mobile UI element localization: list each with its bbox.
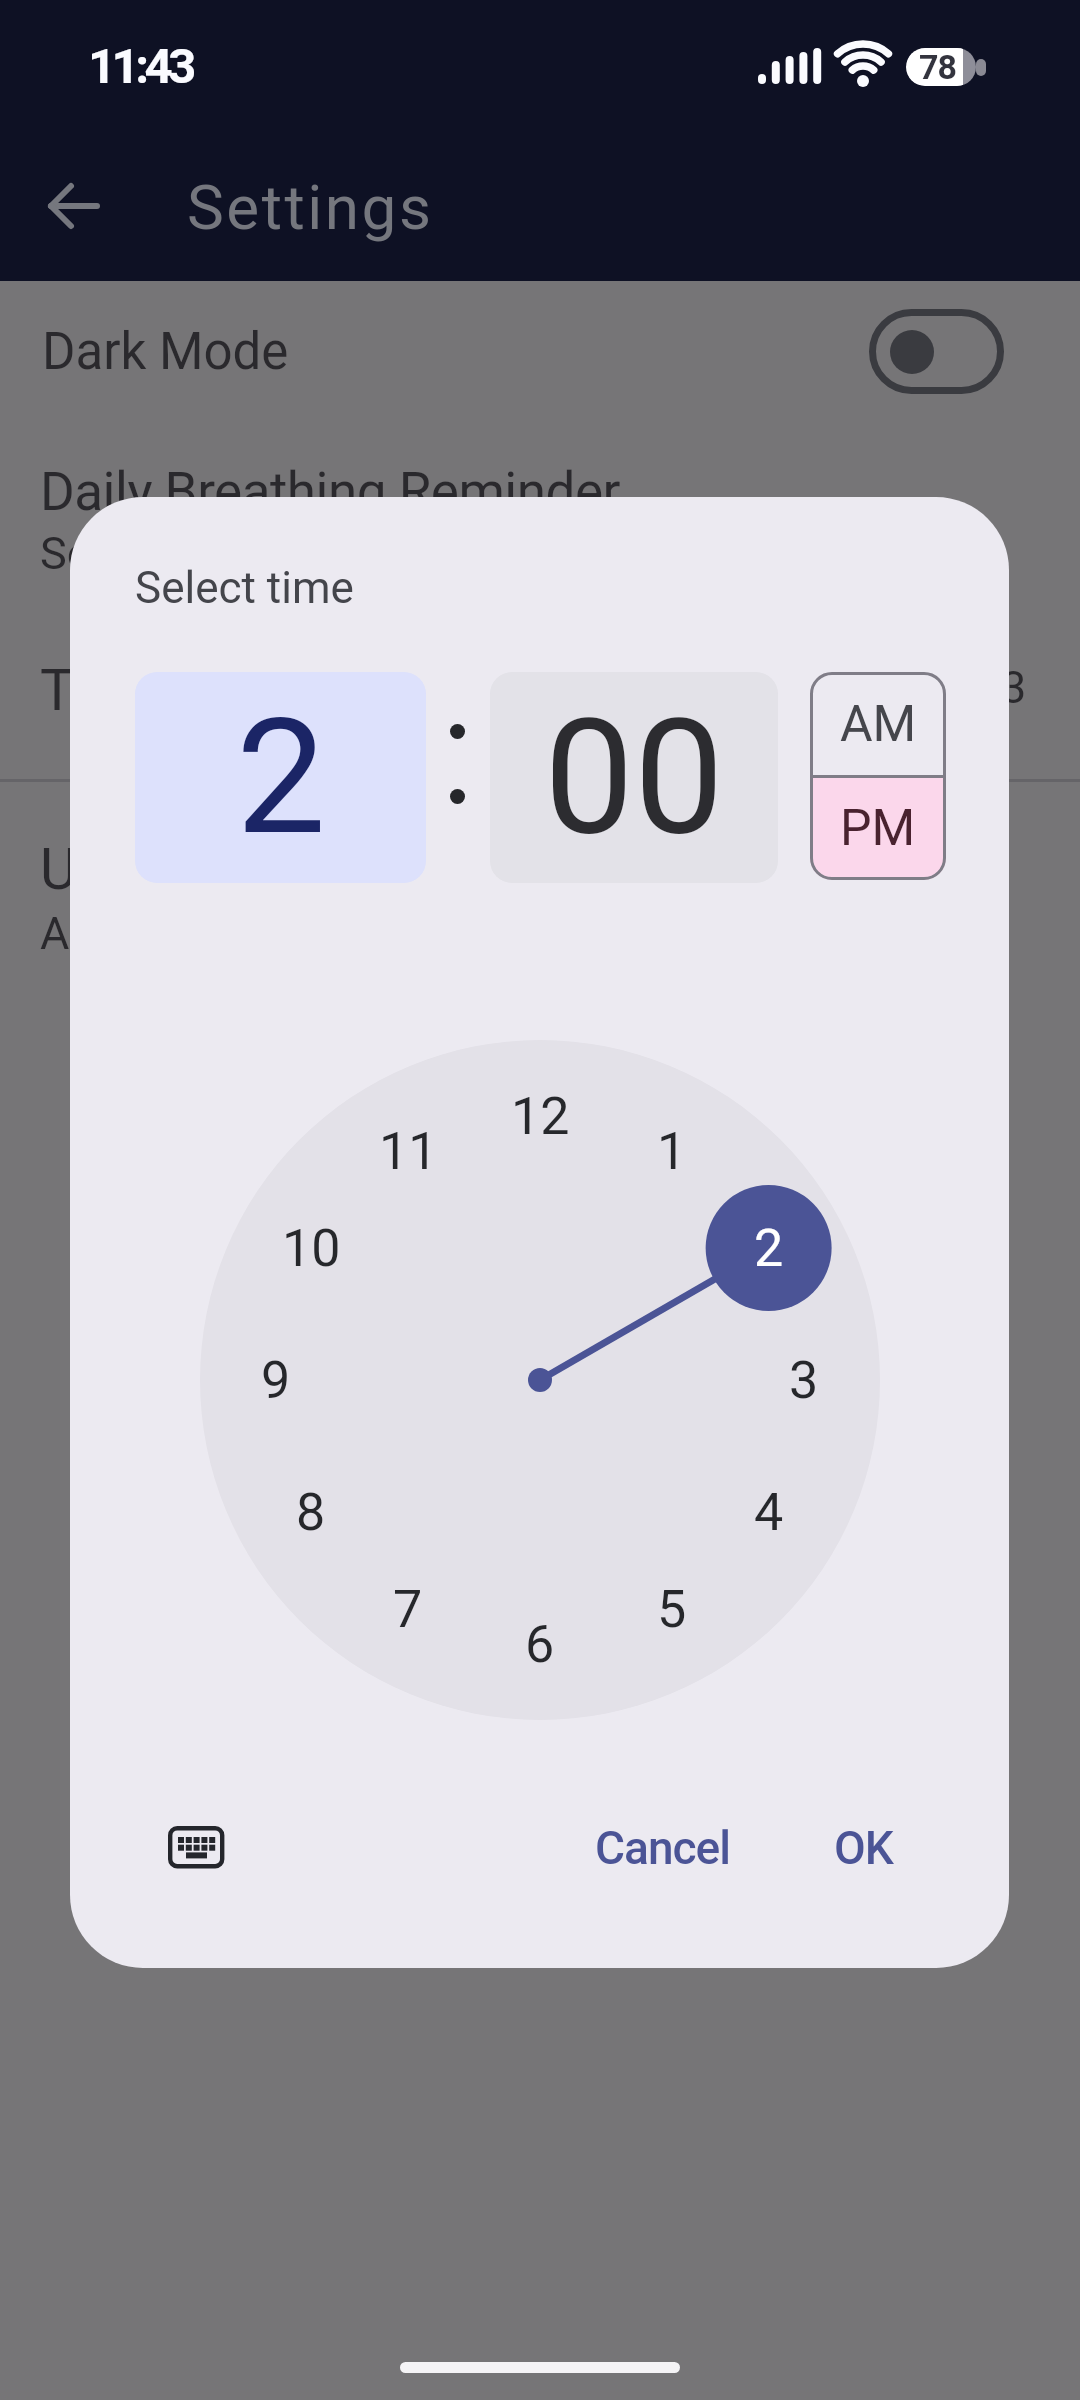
button[interactable]: OK [793,1808,933,1888]
staticText: 3 [1001,661,1027,714]
staticText: Daily Breathing Reminder [40,461,620,523]
staticText: 3 [789,1350,819,1411]
staticText: 4 [754,1482,784,1543]
staticText: Cancel [595,1821,731,1875]
button[interactable]: 00 [490,672,778,883]
staticText: Units [40,836,171,903]
staticText: 11:43 [88,38,192,95]
staticText: Time [40,657,169,724]
button[interactable]: AM [810,672,946,776]
staticText: 9 [261,1350,291,1411]
staticText: AM [840,695,917,754]
staticText: 1 [657,1121,687,1182]
button[interactable]: Cancel [553,1808,773,1888]
staticText: Dark Mode [42,322,289,382]
staticText: 00 [544,684,724,872]
staticText: 11 [379,1121,438,1182]
staticText: Select time [135,562,354,614]
staticText: 8 [296,1482,326,1543]
staticText: 2 [236,684,326,872]
staticText: About [40,907,160,960]
button[interactable] [168,1826,224,1870]
staticText: 10 [282,1218,341,1279]
staticText: PM [840,799,916,858]
staticText: 7 [393,1579,423,1640]
button[interactable]: 2 [135,672,426,883]
staticText: Set daily reminder [40,527,400,580]
staticText: 2 [754,1218,784,1279]
staticText: 5 [657,1579,687,1640]
button[interactable] [0,306,1080,396]
staticText: Settings [187,171,434,244]
button[interactable]: PM [810,776,946,880]
staticText: 6 [525,1614,555,1675]
button[interactable] [869,309,1004,394]
staticText: OK [834,1821,893,1875]
button[interactable] [48,182,100,230]
staticText: 12 [511,1086,570,1147]
staticText: 78 [919,47,957,87]
